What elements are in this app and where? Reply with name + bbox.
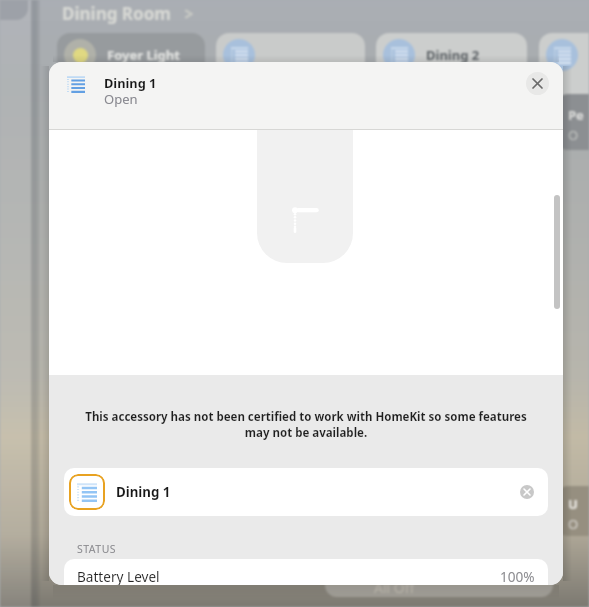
button[interactable]: Clear name: [520, 485, 534, 499]
staticText: Foyer Light: [107, 46, 180, 64]
staticText: Dining Room: [62, 2, 171, 25]
staticText: O: [568, 515, 579, 533]
staticText: Dining 1: [104, 74, 157, 91]
button[interactable]: [325, 560, 553, 597]
staticText: STATUS: [77, 542, 117, 556]
staticText: Pe: [568, 106, 584, 124]
staticText: 100%: [500, 567, 535, 585]
staticText: O: [568, 126, 579, 144]
staticText: Battery Level: [77, 567, 160, 585]
staticText: Dining 1: [116, 483, 171, 501]
button[interactable]: Foyer Light: [57, 33, 205, 95]
staticText: This accessory has not been certified to…: [85, 409, 527, 440]
button[interactable]: [216, 33, 365, 95]
button[interactable]: Battery Level: [64, 559, 548, 585]
button[interactable]: D: [539, 33, 589, 95]
staticText: All Off: [374, 578, 415, 597]
staticText: Dining 2: [426, 46, 480, 64]
button[interactable]: Dining 2: [376, 33, 527, 95]
button[interactable]: Close: [526, 72, 549, 95]
staticText: Open: [104, 90, 138, 108]
button[interactable]: Dining 1: [64, 468, 548, 516]
staticText: U: [568, 495, 578, 513]
